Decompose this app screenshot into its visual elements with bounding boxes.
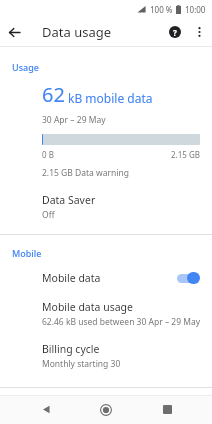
- button[interactable]: More options: [188, 21, 210, 43]
- button[interactable]: Mobile data usage: [0, 293, 212, 335]
- staticText: Off: [42, 209, 55, 221]
- staticText: ?: [173, 27, 177, 38]
- staticText: Monthly starting 30: [42, 358, 121, 370]
- staticText: Billing cycle: [42, 342, 100, 356]
- staticText: kB mobile data: [68, 90, 153, 106]
- staticText: Mobile data: [42, 271, 101, 285]
- staticText: Mobile: [12, 247, 42, 259]
- button[interactable]: Recent apps: [152, 395, 182, 424]
- button[interactable]: Home: [91, 395, 121, 424]
- staticText: Usage: [12, 61, 39, 73]
- button[interactable]: Back: [31, 395, 61, 424]
- staticText: 2.15 GB: [171, 149, 200, 160]
- button[interactable]: Mobile data: [0, 263, 212, 293]
- staticText: 0 B: [42, 149, 54, 160]
- staticText: 100 %: [150, 4, 173, 15]
- staticText: Mobile data usage: [42, 300, 133, 314]
- button[interactable]: Billing cycle: [0, 335, 212, 377]
- staticText: 62.46 kB used between 30 Apr – 29 May: [42, 316, 201, 328]
- button[interactable]: Back: [0, 18, 28, 46]
- staticText: 10:00: [185, 4, 206, 15]
- staticText: Data usage: [42, 23, 112, 41]
- staticText: 2.15 GB Data warning: [42, 167, 129, 179]
- staticText: 30 Apr – 29 May: [42, 114, 106, 126]
- staticText: 62: [42, 81, 65, 108]
- button[interactable]: Help: [162, 19, 188, 45]
- button[interactable]: Data Saver: [0, 187, 212, 227]
- staticText: Data Saver: [42, 193, 96, 207]
